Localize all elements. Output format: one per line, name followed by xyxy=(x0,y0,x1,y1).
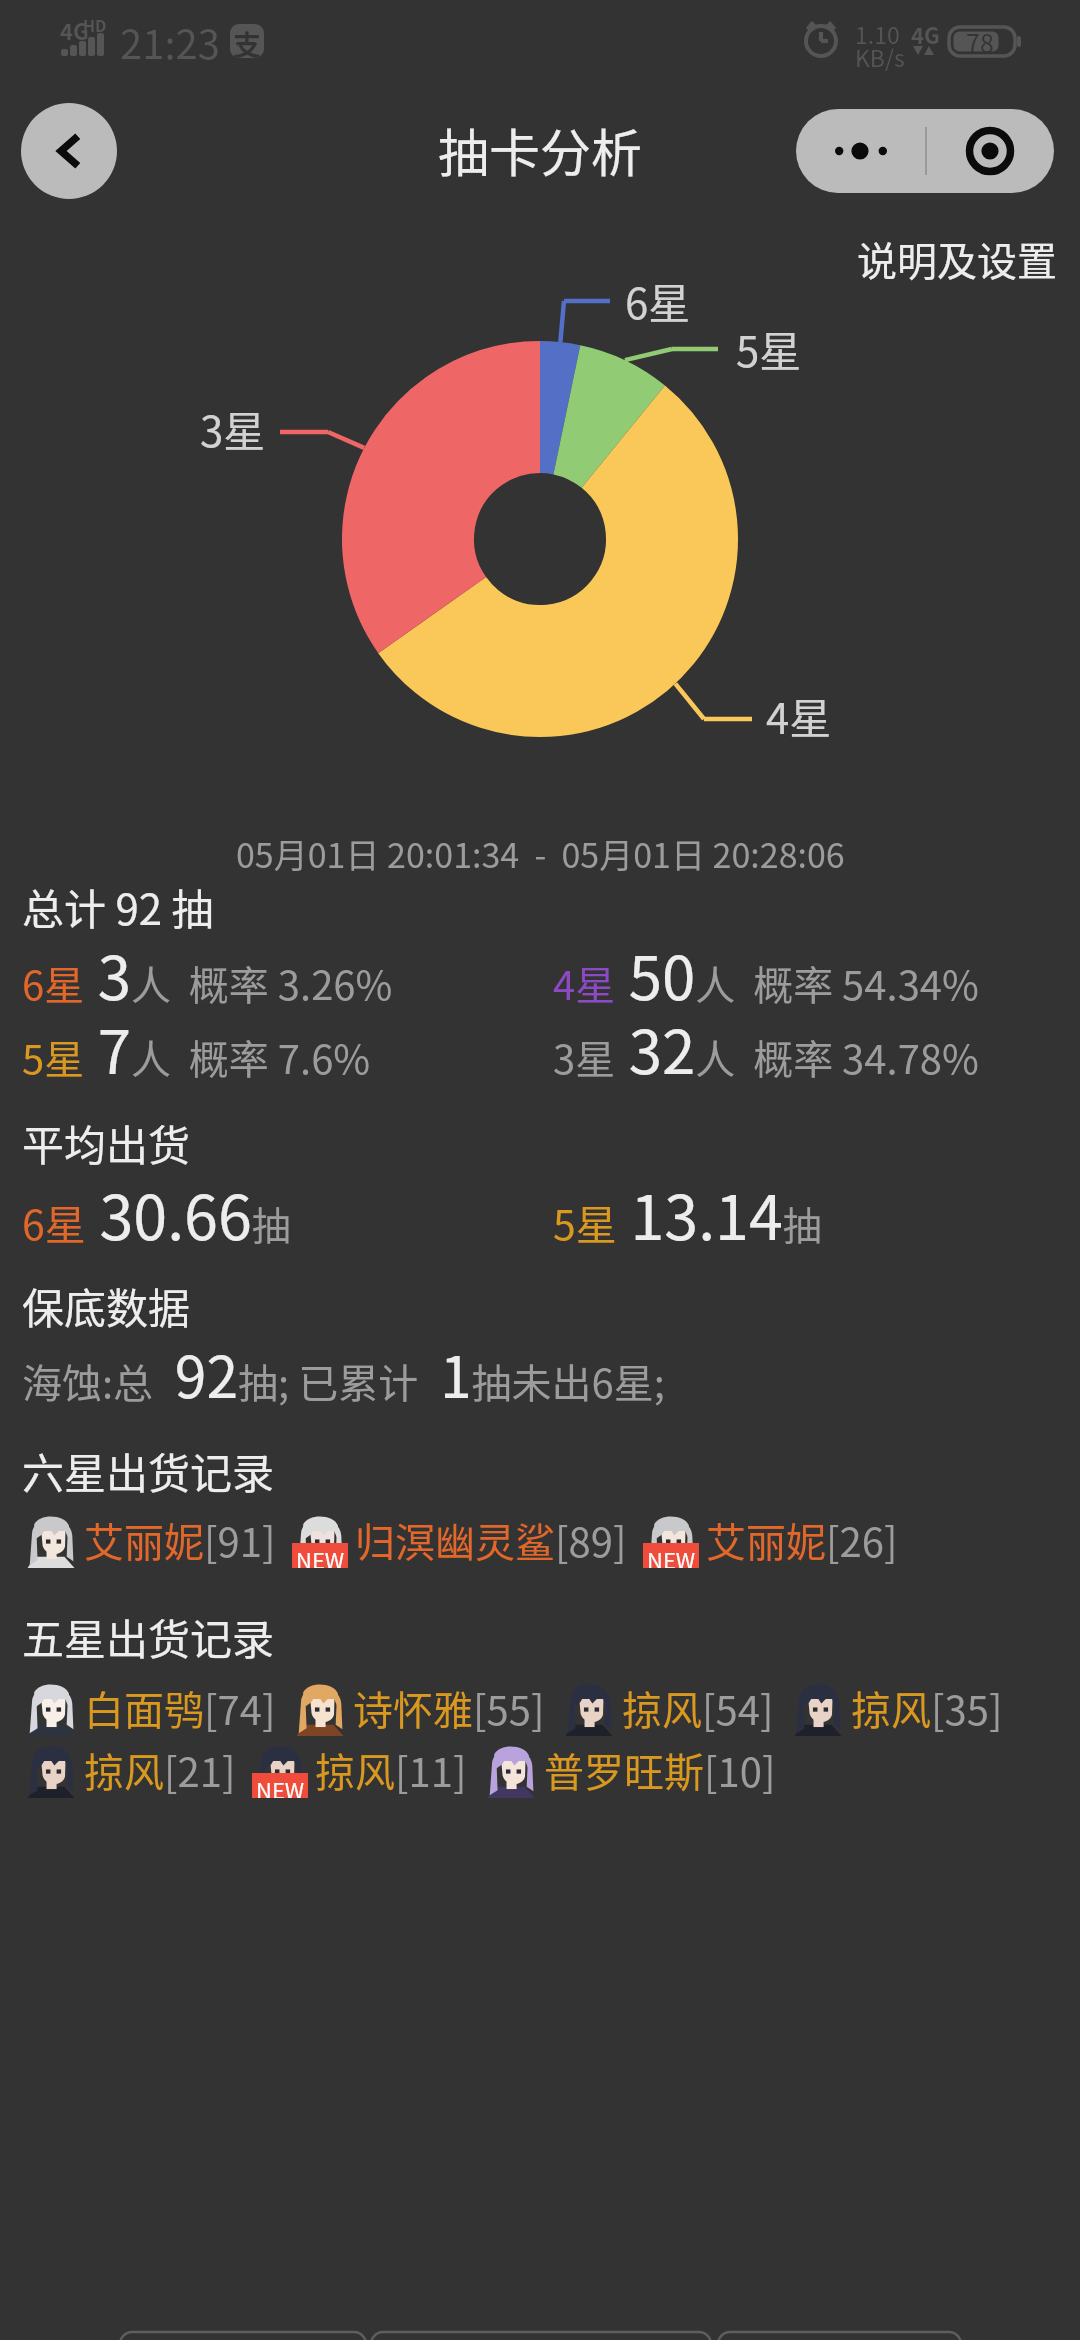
button[interactable]: NEW xyxy=(643,1511,914,1569)
staticText: 05月01日 20:01:34 - 05月01日 20:28:06 xyxy=(236,829,845,878)
button[interactable]: NEW xyxy=(292,1511,643,1569)
button[interactable]: 普罗旺斯[10] xyxy=(483,1741,792,1799)
button[interactable]: Close mini program xyxy=(925,109,1054,193)
staticText: 21:23 xyxy=(120,13,220,71)
button[interactable]: 艾丽妮[91] xyxy=(23,1511,292,1569)
staticText: 6星 3人 概率 3.26% xyxy=(22,930,393,1017)
button[interactable]: Tab one xyxy=(120,2332,366,2340)
button[interactable]: 说明及设置 xyxy=(760,228,1057,290)
staticText: 掠风[54] xyxy=(622,1679,774,1737)
staticText: 4G xyxy=(60,14,89,46)
staticText: 3星 xyxy=(200,398,266,459)
staticText: 5星 13.14抽 xyxy=(553,1169,822,1257)
staticText: 平均出货 xyxy=(22,1112,191,1173)
staticText: 4星 xyxy=(766,685,832,746)
staticText: 掠风[35] xyxy=(851,1679,1003,1737)
staticText: 艾丽妮[26] xyxy=(706,1511,898,1569)
staticText: 普罗旺斯[10] xyxy=(544,1741,776,1799)
staticText: NEW xyxy=(256,1773,305,1798)
staticText: 5星 xyxy=(736,318,802,379)
button[interactable]: 掠风[21] xyxy=(23,1741,252,1799)
staticText: 白面鸮[74] xyxy=(84,1679,276,1737)
staticText: NEW xyxy=(296,1543,345,1568)
staticText: 3星 32人 概率 34.78% xyxy=(553,1004,979,1091)
button[interactable]: 白面鸮[74] xyxy=(23,1679,292,1737)
button[interactable]: 掠风[54] xyxy=(561,1679,790,1737)
staticText: 保底数据 xyxy=(22,1275,191,1336)
staticText: 诗怀雅[55] xyxy=(353,1679,545,1737)
button[interactable]: Back xyxy=(21,103,117,199)
staticText: KB/s xyxy=(855,40,905,73)
button[interactable]: 掠风[35] xyxy=(790,1679,1019,1737)
staticText: 海蚀:总 92抽; 已累计 1抽未出6星; xyxy=(22,1332,665,1415)
staticText: 掠风[11] xyxy=(315,1741,467,1799)
button[interactable]: Tab two xyxy=(371,2332,711,2340)
staticText: 1.10 xyxy=(855,17,900,50)
staticText: 说明及设置 xyxy=(857,230,1057,288)
staticText: HD xyxy=(83,13,107,36)
staticText: 78 xyxy=(966,24,994,60)
staticText: 归溟幽灵鲨[89] xyxy=(355,1511,627,1569)
staticText: 支 xyxy=(233,24,262,58)
staticText: 六星出货记录 xyxy=(22,1440,275,1501)
staticText: 五星出货记录 xyxy=(22,1606,275,1667)
staticText: 抽卡分析 xyxy=(438,113,643,187)
button[interactable]: Tab three xyxy=(718,2332,961,2340)
staticText: 艾丽妮[91] xyxy=(84,1511,276,1569)
staticText: 4G xyxy=(911,18,940,50)
button[interactable]: 诗怀雅[55] xyxy=(292,1679,561,1737)
staticText: 总计 92 抽 xyxy=(22,876,214,937)
button[interactable]: More options xyxy=(796,109,925,193)
staticText: 6星 30.66抽 xyxy=(22,1169,291,1257)
staticText: 4星 50人 概率 54.34% xyxy=(553,930,979,1017)
staticText: 6星 xyxy=(625,270,691,331)
staticText: 掠风[21] xyxy=(84,1741,236,1799)
button[interactable]: NEW xyxy=(252,1741,483,1799)
staticText: 5星 7人 概率 7.6% xyxy=(22,1004,371,1091)
staticText: NEW xyxy=(647,1543,696,1568)
